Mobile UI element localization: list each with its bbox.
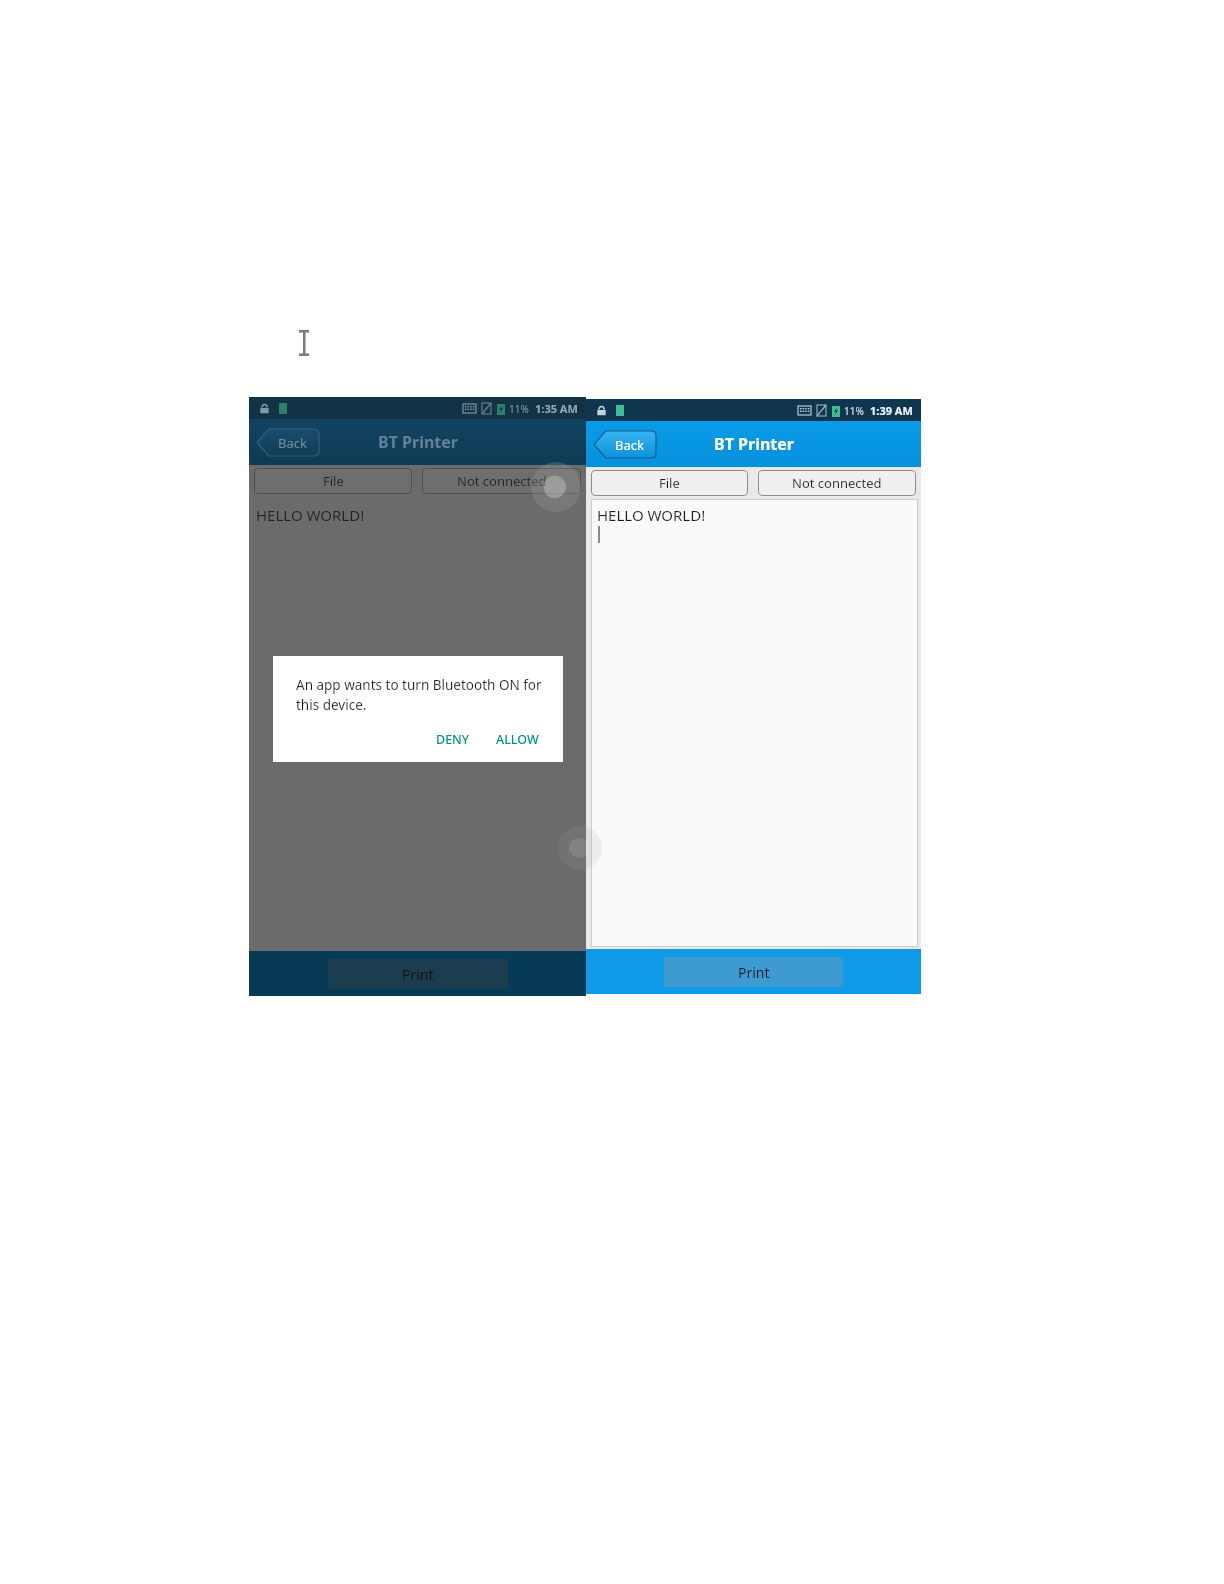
staticText: ALLOW xyxy=(496,731,539,748)
staticText: HELLO WORLD! xyxy=(256,505,365,525)
staticText: BT Printer xyxy=(714,433,794,455)
staticText: File xyxy=(323,472,344,490)
button[interactable]: Not connected xyxy=(758,470,916,496)
staticText: DENY xyxy=(436,731,470,748)
staticText: Not connected xyxy=(792,474,882,492)
button[interactable]: Back xyxy=(594,431,656,458)
staticText: HELLO WORLD! xyxy=(597,505,706,525)
button[interactable]: File xyxy=(254,468,412,494)
staticText: Print xyxy=(402,965,434,984)
button[interactable]: Not connected xyxy=(422,468,581,494)
button[interactable]: ALLOW xyxy=(490,727,545,752)
staticText: 11% xyxy=(844,404,864,418)
staticText: File xyxy=(659,474,680,492)
staticText: Not connected xyxy=(457,472,547,490)
staticText: 1:39 AM xyxy=(870,403,913,418)
staticText: 1:35 AM xyxy=(535,401,578,416)
button[interactable]: DENY xyxy=(430,727,476,752)
staticText: Back xyxy=(278,434,307,452)
button[interactable]: Print xyxy=(328,959,508,989)
button[interactable]: HELLO WORLD! xyxy=(591,499,918,947)
staticText: 11% xyxy=(509,402,529,416)
staticText: An app wants to turn Bluetooth ON for th… xyxy=(296,676,545,714)
button[interactable]: Print xyxy=(664,957,843,987)
button[interactable]: Back xyxy=(257,429,319,456)
staticText: BT Printer xyxy=(378,431,458,453)
staticText: Back xyxy=(615,436,644,454)
button[interactable]: File xyxy=(591,470,748,496)
staticText: Print xyxy=(738,963,770,982)
